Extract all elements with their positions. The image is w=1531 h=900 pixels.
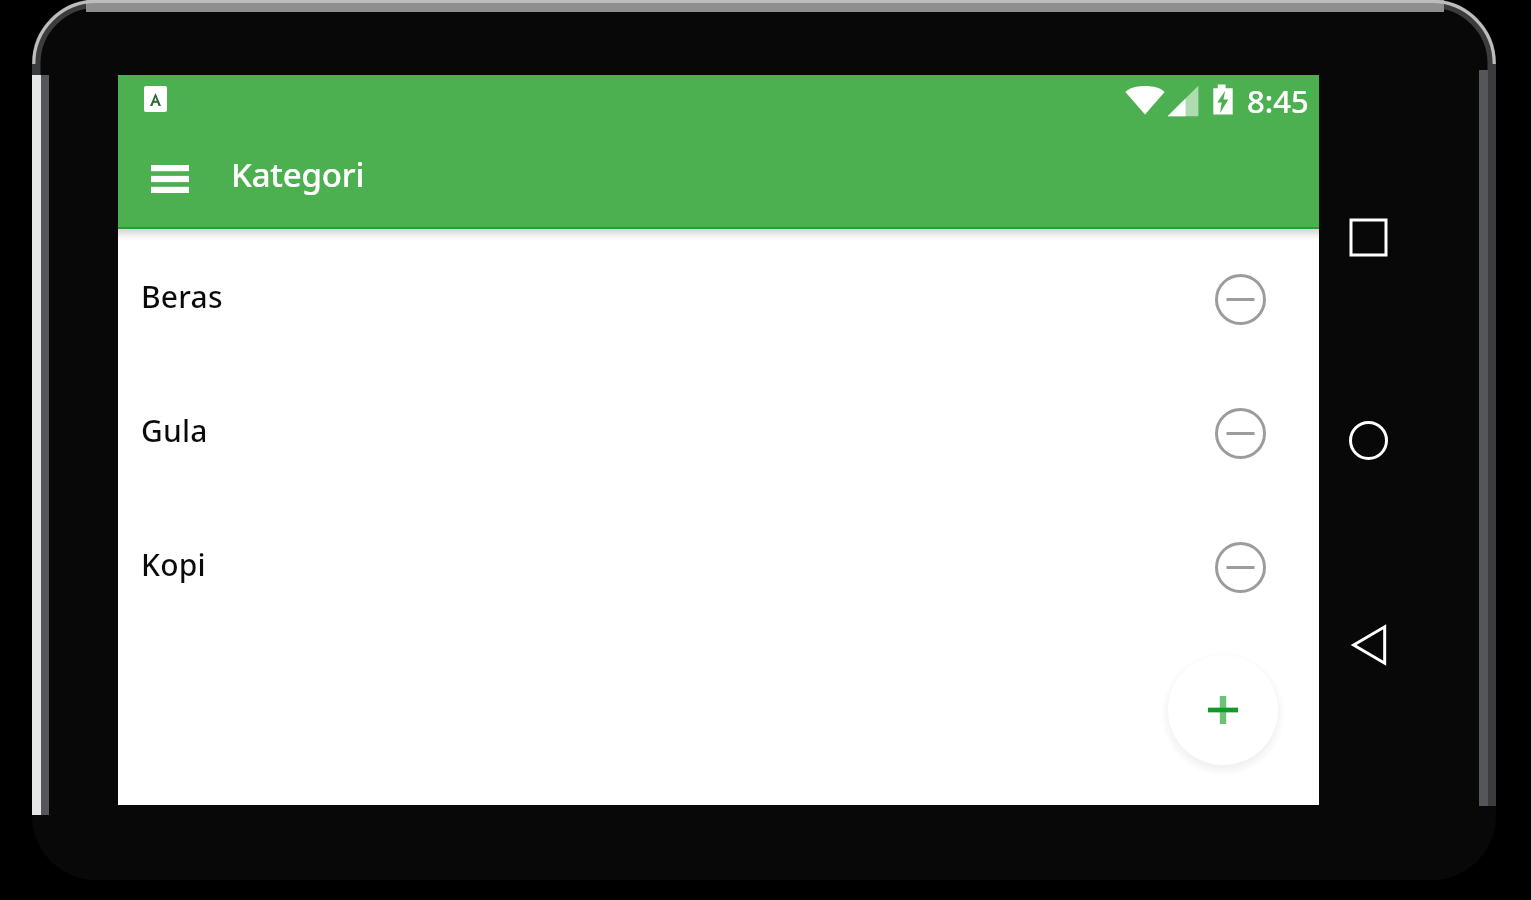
staticText: Beras [141,276,223,317]
button[interactable]: Remove Gula [1211,404,1269,462]
button[interactable]: Home [1338,410,1398,470]
button[interactable]: Beras [118,232,1319,366]
button[interactable]: Recent apps [1338,207,1398,267]
staticText: Kategori [231,152,365,197]
button[interactable]: Kopi [118,500,1319,634]
staticText: Kopi [141,544,206,585]
button[interactable]: Remove Beras [1211,270,1269,328]
staticText: Gula [141,410,208,451]
button[interactable]: Gula [118,366,1319,500]
button[interactable]: Back [1339,615,1399,675]
button[interactable]: Add category [1168,655,1278,765]
button[interactable]: Remove Kopi [1211,538,1269,596]
button[interactable]: Open navigation menu [141,150,198,207]
staticText: 8:45 [1247,80,1309,122]
